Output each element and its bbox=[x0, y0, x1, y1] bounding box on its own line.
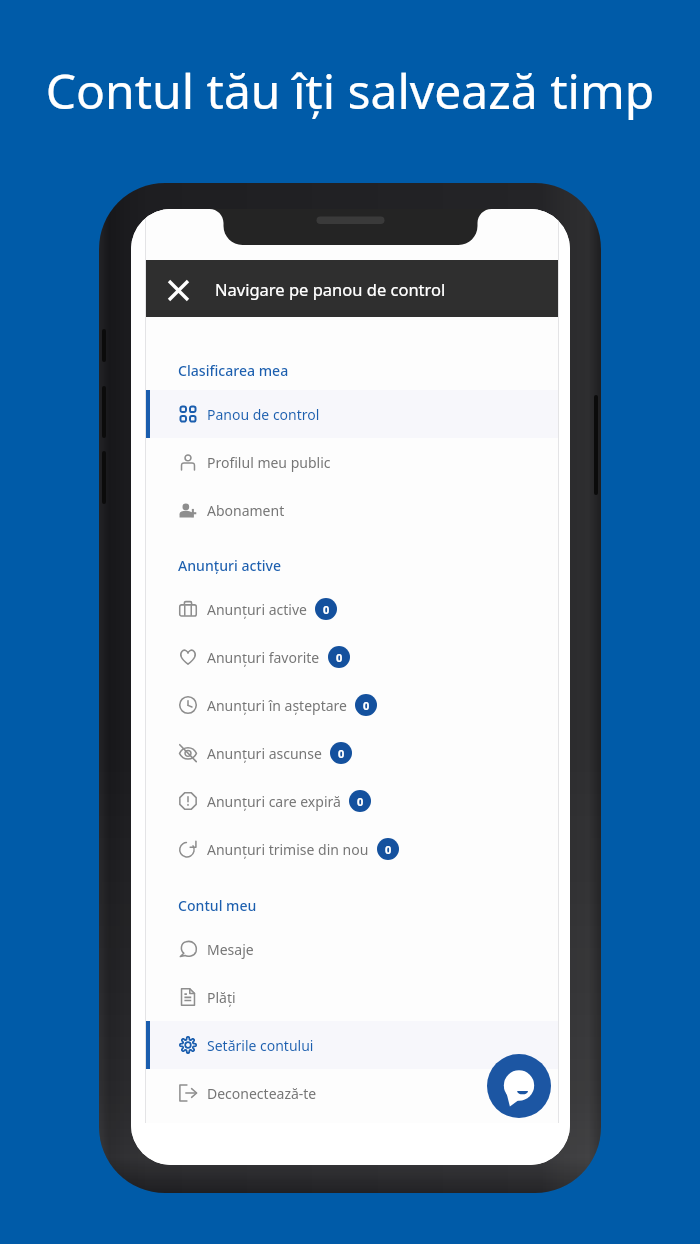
staticText: Anunțuri trimise din nou bbox=[207, 840, 369, 859]
staticText: Anunțuri favorite bbox=[207, 648, 320, 667]
button[interactable]: Abonament bbox=[146, 486, 558, 534]
staticText: Anunțuri active bbox=[178, 556, 282, 575]
staticText: Anunțuri care expiră bbox=[207, 792, 341, 811]
button[interactable]: Panou de control bbox=[146, 390, 558, 438]
staticText: Anunțuri în așteptare bbox=[207, 696, 347, 715]
button[interactable]: Close bbox=[146, 260, 558, 317]
staticText: Panou de control bbox=[207, 405, 320, 424]
staticText: Mesaje bbox=[207, 940, 254, 959]
button[interactable]: Mesaje bbox=[146, 925, 558, 973]
staticText: Anunțuri ascunse bbox=[207, 744, 322, 763]
staticText: 0 bbox=[385, 842, 392, 857]
staticText: 0 bbox=[338, 746, 345, 761]
button[interactable]: Deconectează-te bbox=[146, 1069, 558, 1117]
staticText: 0 bbox=[357, 794, 364, 809]
staticText: 0 bbox=[323, 602, 330, 617]
staticText: Setările contului bbox=[207, 1036, 314, 1055]
staticText: Abonament bbox=[207, 501, 285, 520]
staticText: 0 bbox=[336, 650, 343, 665]
button[interactable]: Profilul meu public bbox=[146, 438, 558, 486]
staticText: Contul meu bbox=[178, 896, 257, 915]
button[interactable]: Plăți bbox=[146, 973, 558, 1021]
staticText: Anunțuri active bbox=[207, 600, 307, 619]
button[interactable]: Chat bbox=[487, 1054, 551, 1118]
staticText: Clasificarea mea bbox=[178, 361, 289, 380]
button[interactable]: Setările contului bbox=[146, 1021, 558, 1069]
button[interactable]: Anunțuri ascunse bbox=[146, 729, 558, 777]
button[interactable]: Anunțuri favorite bbox=[146, 633, 558, 681]
button[interactable]: Close bbox=[146, 260, 215, 317]
button[interactable]: Anunțuri în așteptare bbox=[146, 681, 558, 729]
button[interactable]: Anunțuri care expiră bbox=[146, 777, 558, 825]
staticText: Navigare pe panou de control bbox=[215, 278, 446, 300]
staticText: Deconectează-te bbox=[207, 1084, 317, 1103]
button[interactable]: Anunțuri trimise din nou bbox=[146, 825, 558, 873]
staticText: Plăți bbox=[207, 988, 236, 1007]
staticText: Profilul meu public bbox=[207, 453, 331, 472]
staticText: 0 bbox=[363, 698, 370, 713]
staticText: Contul tău îți salvează timp bbox=[0, 58, 700, 123]
button[interactable]: Anunțuri active bbox=[146, 585, 558, 633]
